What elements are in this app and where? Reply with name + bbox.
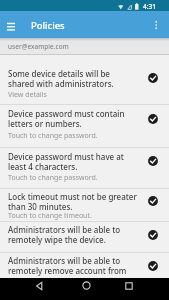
staticText: Device password must have at least 4 cha… — [8, 151, 124, 172]
staticText: 4:31 — [143, 2, 156, 11]
staticText: Touch to change timeout. — [8, 211, 92, 221]
staticText: Administrators will be able to remotely … — [8, 255, 127, 276]
staticText: Some device details will be shared with … — [8, 68, 114, 89]
staticText: Policies — [31, 19, 65, 32]
staticText: Touch to change password. — [8, 173, 98, 183]
staticText: View details — [8, 90, 47, 100]
staticText: Device password must contain letters or … — [8, 108, 125, 129]
staticText: Lock timeout must not be greater than 30… — [8, 191, 137, 212]
staticText: Touch to change password. — [8, 131, 98, 141]
staticText: user@example.com — [8, 42, 69, 51]
staticText: Administrators will be able to remotely … — [8, 224, 121, 245]
